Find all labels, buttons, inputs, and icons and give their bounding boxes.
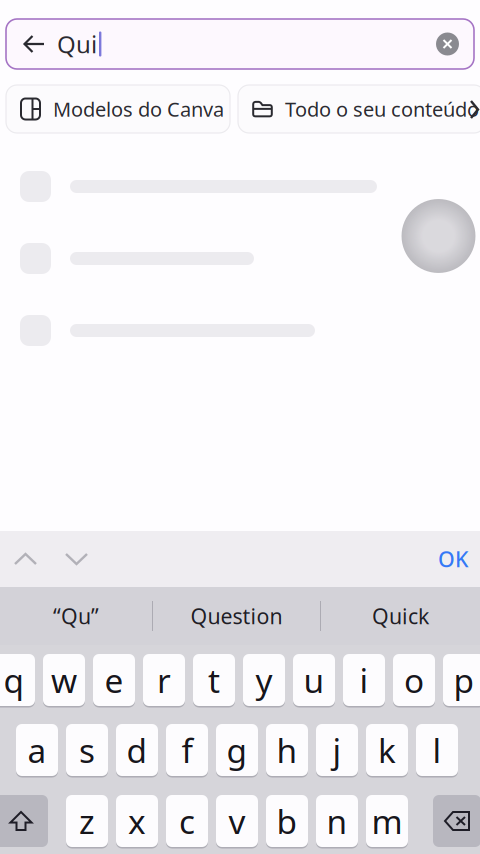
staticText: z (79, 799, 95, 843)
staticText: k (378, 728, 396, 772)
button[interactable]: “Qu” (0, 587, 152, 645)
staticText: e (104, 658, 123, 702)
staticText: u (303, 658, 324, 702)
button[interactable]: p (443, 654, 480, 706)
button[interactable]: Back (6, 19, 57, 69)
button[interactable]: t (193, 654, 235, 706)
staticText: y (255, 658, 272, 702)
button[interactable]: u (293, 654, 335, 706)
staticText: p (453, 658, 474, 702)
button[interactable]: z (66, 795, 108, 847)
staticText: Quick (372, 602, 429, 630)
staticText: w (51, 658, 77, 702)
button[interactable]: OK (438, 531, 480, 587)
staticText: r (157, 658, 171, 702)
staticText: s (79, 728, 95, 772)
button[interactable]: Todo o seu conteúdo (238, 85, 480, 133)
staticText: q (3, 658, 24, 702)
button[interactable]: b (266, 795, 308, 847)
button[interactable]: Shift (0, 795, 48, 847)
staticText: m (371, 799, 402, 843)
button[interactable]: Next field (51, 531, 102, 587)
button[interactable]: k (366, 724, 408, 776)
staticText: OK (438, 545, 468, 573)
button[interactable]: Quick (321, 587, 480, 645)
button[interactable]: d (116, 724, 158, 776)
staticText: o (404, 658, 424, 702)
button[interactable]: n (316, 795, 358, 847)
staticText: “Qu” (53, 602, 99, 630)
button[interactable]: g (216, 724, 258, 776)
button[interactable]: o (393, 654, 435, 706)
button[interactable]: Delete (433, 795, 480, 847)
staticText: j (332, 728, 341, 772)
staticText: h (276, 728, 297, 772)
button[interactable]: w (43, 654, 85, 706)
staticText: Todo o seu conteúdo (285, 96, 479, 122)
button[interactable]: x (116, 795, 158, 847)
button[interactable]: Question (153, 587, 320, 645)
button[interactable]: i (343, 654, 385, 706)
staticText: i (359, 658, 368, 702)
button[interactable]: a (16, 724, 58, 776)
button[interactable]: v (216, 795, 258, 847)
button[interactable]: j (316, 724, 358, 776)
staticText: c (179, 799, 195, 843)
staticText: Modelos do Canva (53, 96, 224, 122)
button[interactable]: h (266, 724, 308, 776)
staticText: l (432, 728, 441, 772)
staticText: n (326, 799, 347, 843)
button[interactable]: Modelos do Canva (6, 85, 230, 133)
button[interactable]: f (166, 724, 208, 776)
button[interactable]: l (416, 724, 458, 776)
staticText: Question (190, 602, 282, 630)
button[interactable]: e (93, 654, 135, 706)
staticText: d (126, 728, 147, 772)
button[interactable]: s (66, 724, 108, 776)
staticText: x (128, 799, 146, 843)
staticText: b (276, 799, 297, 843)
button[interactable]: Previous field (0, 531, 51, 587)
button[interactable]: c (166, 795, 208, 847)
staticText: a (27, 728, 46, 772)
button[interactable]: q (0, 654, 35, 706)
button[interactable]: Clear search (436, 19, 474, 69)
staticText: g (226, 728, 247, 772)
staticText: Qui (57, 28, 97, 60)
button[interactable]: m (366, 795, 408, 847)
staticText: t (208, 658, 220, 702)
button[interactable]: y (243, 654, 285, 706)
staticText: v (228, 799, 245, 843)
button[interactable]: r (143, 654, 185, 706)
staticText: f (181, 728, 192, 772)
